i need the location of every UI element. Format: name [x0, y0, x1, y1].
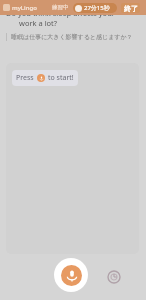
- staticText: Do you think sleep affects your: [6, 8, 115, 18]
- button[interactable]: 終了: [121, 3, 140, 13]
- staticText: 睡眠は仕事に大きく影響すると感じますか？: [11, 33, 133, 41]
- staticText: Press: [16, 73, 34, 83]
- staticText: work a lot?: [19, 18, 58, 28]
- staticText: myLingo: [12, 4, 37, 12]
- button[interactable]: Settings: [106, 269, 122, 285]
- button[interactable]: Record: [54, 258, 88, 292]
- staticText: 27分15秒: [84, 4, 110, 12]
- button[interactable]: Press: [12, 70, 78, 86]
- staticText: 練習中: [52, 4, 69, 11]
- staticText: to start!: [48, 73, 74, 83]
- staticText: 終了: [124, 4, 138, 13]
